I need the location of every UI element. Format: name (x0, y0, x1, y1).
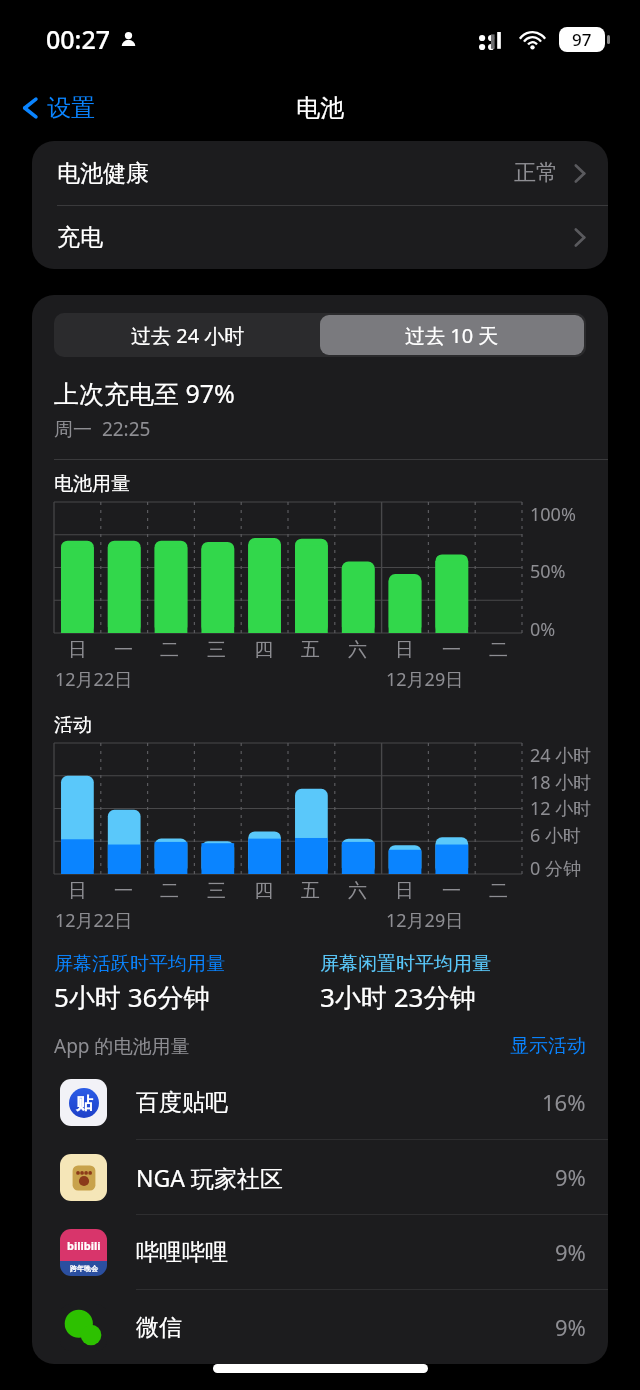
staticText: 12月29日 (386, 908, 464, 933)
staticText: 12 小时 (530, 796, 592, 821)
staticText: bilibili (67, 1238, 101, 1253)
staticText: 日 (395, 638, 414, 662)
button[interactable]: 微信 (32, 1290, 608, 1364)
staticText: 12月22日 (55, 908, 133, 933)
staticText: 三 (207, 879, 226, 903)
button[interactable]: 充电 (32, 206, 608, 269)
staticText: 四 (254, 638, 273, 662)
staticText: 充电 (57, 223, 103, 252)
staticText: 5小时 36分钟 (54, 979, 210, 1015)
staticText: 电池用量 (54, 472, 130, 496)
staticText: 0 分钟 (530, 856, 581, 881)
staticText: 周一 22:25 (54, 416, 151, 442)
button[interactable]: 屏幕闲置时平均用量 (320, 952, 586, 1015)
staticText: 屏幕活跃时平均用量 (54, 952, 225, 976)
staticText: 二 (489, 638, 508, 662)
staticText: 百度贴吧 (136, 1088, 228, 1117)
staticText: 活动 (54, 713, 92, 737)
button[interactable]: 过去 10 天 (320, 315, 584, 355)
staticText: 12月22日 (55, 667, 133, 692)
staticText: 电池 (296, 93, 344, 123)
button[interactable]: 设置 (14, 89, 103, 127)
staticText: 上次充电至 97% (54, 376, 235, 410)
staticText: 00:27 (46, 22, 111, 56)
staticText: 哔哩哔哩 (136, 1238, 228, 1267)
button[interactable]: 贴 (32, 1065, 608, 1139)
staticText: 二 (489, 879, 508, 903)
button[interactable]: 过去 24 小时 (56, 315, 320, 355)
staticText: 正常 (514, 159, 558, 187)
staticText: 五 (301, 879, 320, 903)
staticText: 四 (254, 879, 273, 903)
staticText: 屏幕闲置时平均用量 (320, 952, 491, 976)
staticText: 五 (301, 638, 320, 662)
button[interactable]: 电池健康 (32, 141, 608, 205)
staticText: 设置 (47, 93, 95, 123)
staticText: 显示活动 (510, 1034, 586, 1058)
staticText: App 的电池用量 (54, 1033, 190, 1059)
staticText: 50% (530, 559, 566, 584)
staticText: 日 (395, 879, 414, 903)
button[interactable]: 显示活动 (510, 1034, 586, 1058)
staticText: 微信 (136, 1313, 182, 1342)
staticText: 97 (572, 28, 592, 51)
staticText: 六 (348, 879, 367, 903)
staticText: 二 (160, 638, 179, 662)
staticText: 6 小时 (530, 823, 581, 848)
staticText: 9% (555, 1162, 586, 1192)
staticText: 0% (530, 617, 556, 642)
staticText: 二 (160, 879, 179, 903)
staticText: 24 小时 (530, 743, 592, 768)
staticText: 18 小时 (530, 770, 592, 795)
staticText: 一 (442, 638, 461, 662)
staticText: 跨年晚会 (70, 1264, 98, 1273)
staticText: 3小时 23分钟 (320, 979, 476, 1015)
staticText: 贴 (76, 1093, 93, 1114)
staticText: 16% (542, 1087, 586, 1117)
staticText: 一 (114, 638, 133, 662)
staticText: 电池健康 (57, 159, 149, 188)
staticText: 过去 10 天 (405, 322, 499, 349)
staticText: 过去 24 小时 (131, 322, 245, 349)
staticText: NGA 玩家社区 (136, 1162, 283, 1193)
staticText: 三 (207, 638, 226, 662)
staticText: 一 (114, 879, 133, 903)
button[interactable]: 屏幕活跃时平均用量 (54, 952, 320, 1015)
staticText: 日 (68, 638, 87, 662)
staticText: 9% (555, 1312, 586, 1342)
button[interactable]: NGA 玩家社区 (32, 1140, 608, 1214)
button[interactable]: bilibili (32, 1215, 608, 1289)
staticText: 12月29日 (386, 667, 464, 692)
staticText: 一 (442, 879, 461, 903)
staticText: 9% (555, 1237, 586, 1267)
staticText: 日 (68, 879, 87, 903)
staticText: 100% (530, 502, 576, 527)
staticText: 六 (348, 638, 367, 662)
